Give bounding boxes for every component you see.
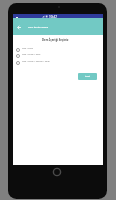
staticText: Vize + Final [22,47,33,50]
button[interactable]: Vize + Proje + Sunum + Final [13,59,103,66]
button[interactable]: İLERİ [78,73,97,80]
button[interactable]: Back [13,18,25,35]
button[interactable]: Vize + Final [13,46,103,53]
staticText: Ders İçeriği Seçimi [28,26,48,29]
button[interactable]: Vize + Proje + Final [13,52,103,59]
staticText: İLERİ [85,75,90,78]
staticText: Vize + Proje + Final [22,53,40,56]
staticText: 10:47 [49,14,57,19]
staticText: Ders İçeriği Seçiniz [42,38,68,42]
staticText: Vize + Proje + Sunum + Final [22,60,50,63]
